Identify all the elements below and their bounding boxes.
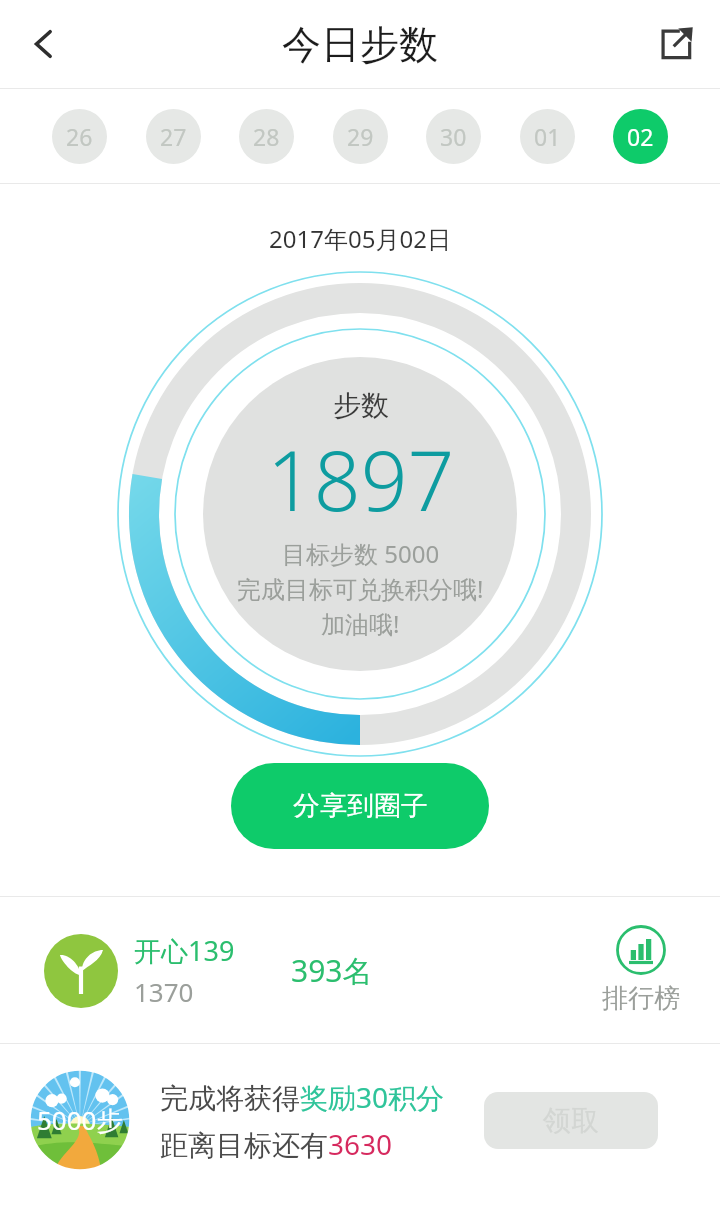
button[interactable]: 开心139 [44,932,235,1009]
staticText: 30 [440,121,467,152]
button[interactable]: 27 [146,109,201,164]
staticText: 开心139 [134,932,235,969]
staticText: 393名 [291,950,373,991]
staticText: 领取 [543,1103,599,1138]
staticText: 01 [534,121,561,152]
button[interactable]: 01 [520,109,575,164]
staticText: 28 [253,121,280,152]
staticText: 目标步数 5000 [282,537,440,570]
button[interactable]: Back [0,0,88,88]
staticText: 今日步数 [282,20,438,69]
staticText: 1897 [267,423,455,535]
staticText: 2017年05月02日 [0,222,720,255]
button[interactable]: 02 [613,109,668,164]
button[interactable]: Share [632,0,720,88]
button[interactable]: 30 [426,109,481,164]
staticText: 5000步 [37,1102,123,1138]
button[interactable]: 分享到圈子 [231,763,489,849]
staticText: 26 [66,121,93,152]
staticText: 02 [627,121,654,152]
button[interactable]: 29 [333,109,388,164]
staticText: 距离目标还有3630 [160,1125,393,1163]
staticText: 加油哦! [321,607,400,640]
staticText: 29 [347,121,374,152]
staticText: 1370 [134,974,194,1009]
button[interactable]: 排行榜 [602,925,680,1015]
staticText: 分享到圈子 [293,789,428,823]
staticText: 27 [160,121,187,152]
staticText: 完成目标可兑换积分哦! [237,572,484,605]
staticText: 完成将获得奖励30积分 [160,1078,445,1116]
button[interactable]: 28 [239,109,294,164]
staticText: 排行榜 [602,982,680,1015]
button[interactable]: 领取 [484,1092,658,1149]
staticText: 步数 [333,388,389,423]
button[interactable]: 26 [52,109,107,164]
